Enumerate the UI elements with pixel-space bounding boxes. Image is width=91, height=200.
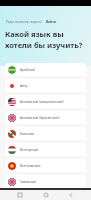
staticText: Арабский — [20, 68, 35, 72]
button[interactable]: Английский (британский) — [5, 111, 86, 124]
button[interactable]: Английский (американский) — [5, 95, 86, 108]
button[interactable]: Баскский — [5, 127, 86, 140]
button[interactable]: Арабский — [5, 63, 86, 76]
button[interactable]: Венгерский — [5, 143, 86, 156]
staticText: Баскский — [20, 132, 35, 136]
button[interactable]: Home — [41, 190, 51, 200]
staticText: Английский (британский) — [20, 116, 60, 120]
button[interactable]: Айну — [5, 79, 86, 92]
staticText: Войти — [46, 20, 56, 24]
staticText: Английский (американский) — [20, 100, 64, 104]
staticText: Вьетнамский — [20, 164, 41, 168]
button[interactable]: Вьетнамский — [5, 159, 86, 172]
button[interactable]: Recents — [15, 190, 25, 200]
staticText: Гавайский — [20, 180, 37, 184]
staticText: Венгерский — [20, 148, 39, 152]
staticText: Какой язык вы хотели бы изучить? — [5, 29, 83, 50]
button[interactable]: Back — [66, 190, 76, 200]
staticText: Рады снова вас видеть! — [6, 20, 43, 24]
button[interactable]: Войти — [45, 19, 57, 25]
staticText: Айну — [20, 84, 28, 88]
button[interactable]: Гавайский — [5, 175, 86, 188]
